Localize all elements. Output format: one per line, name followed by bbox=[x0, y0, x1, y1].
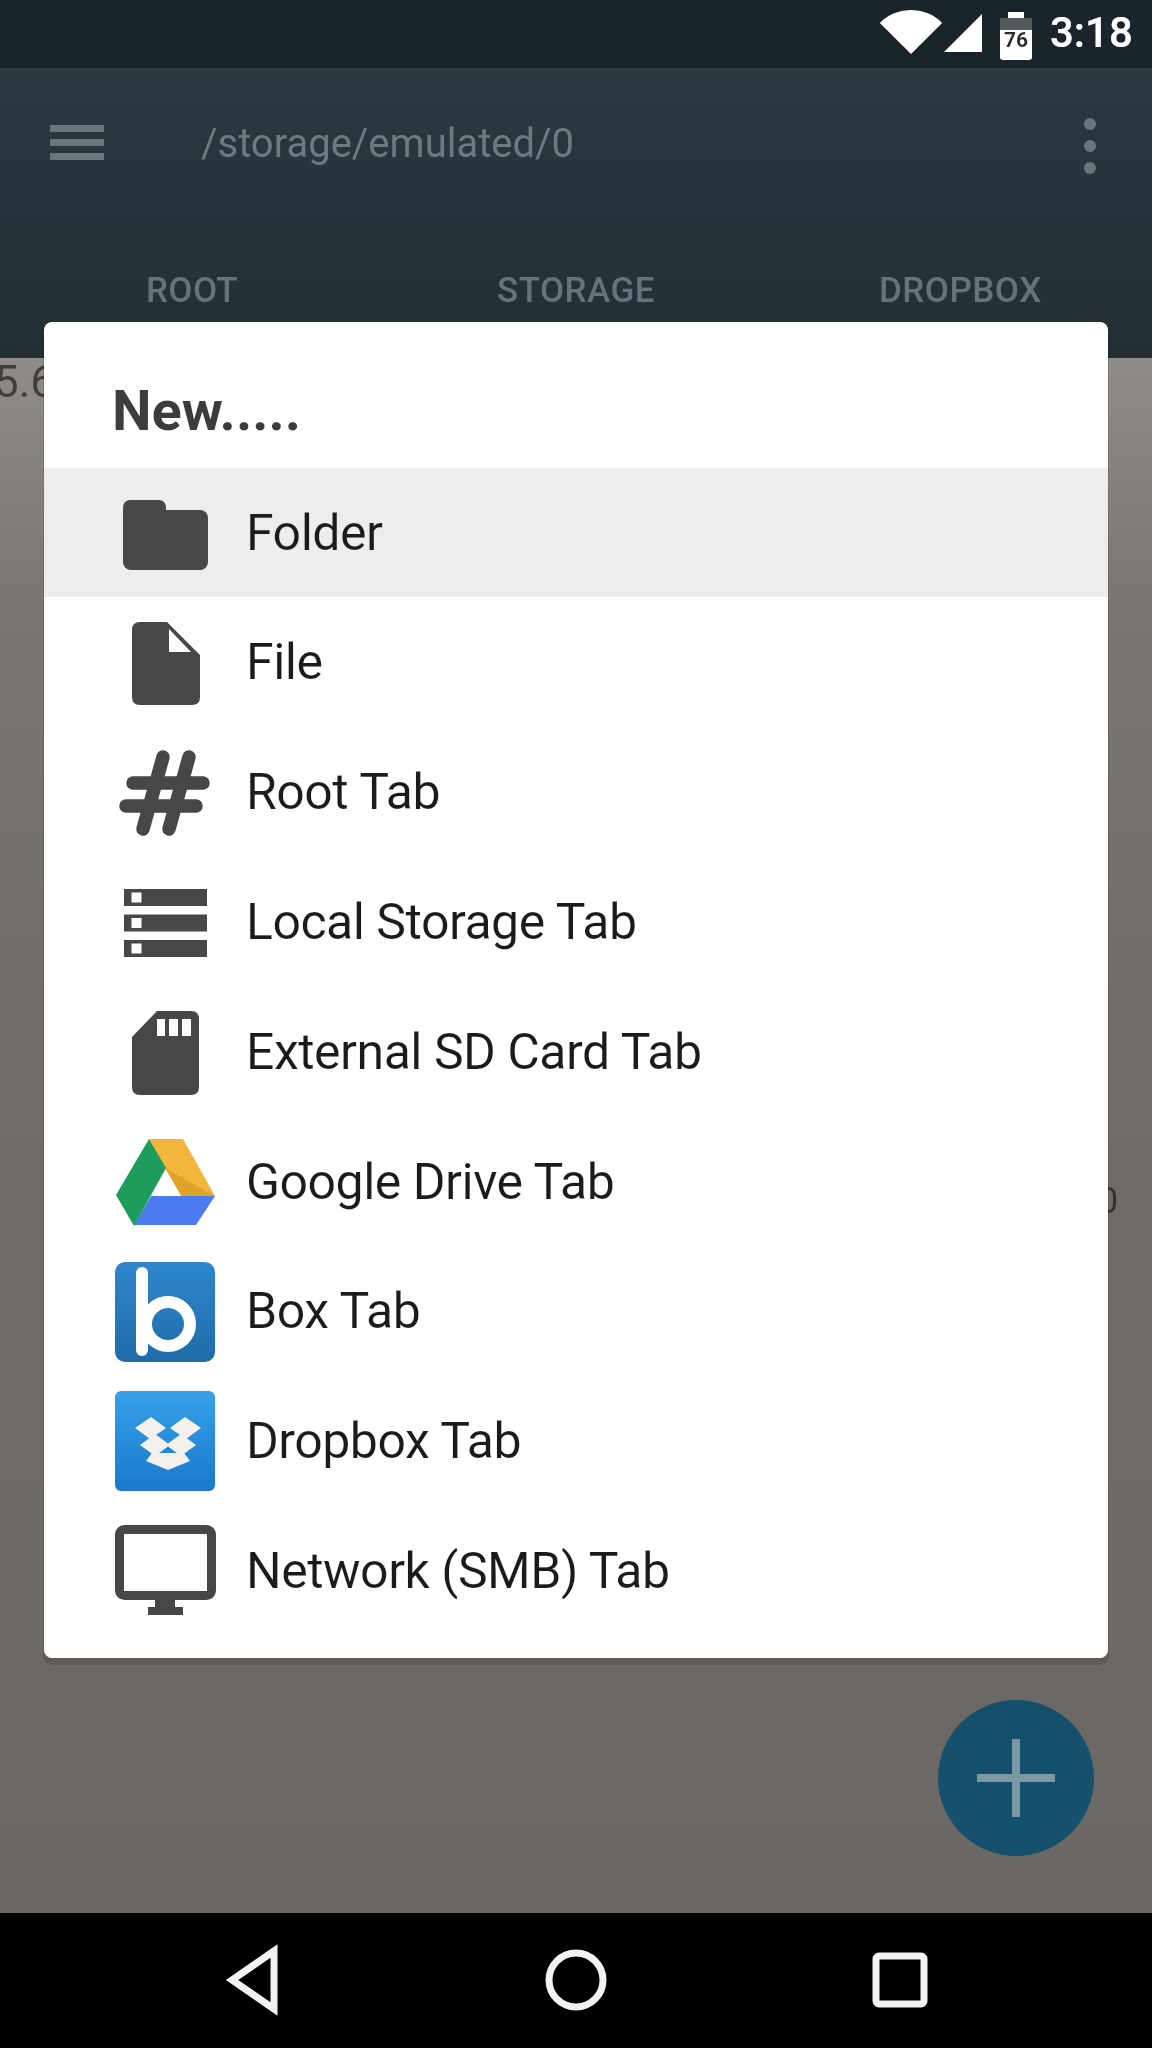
staticText: Root Tab bbox=[246, 763, 440, 822]
button[interactable]: ROOT bbox=[0, 258, 384, 322]
button[interactable] bbox=[212, 1935, 304, 2025]
staticText: Google Drive Tab bbox=[246, 1153, 615, 1212]
button[interactable] bbox=[1064, 112, 1116, 180]
button[interactable]: Root Tab bbox=[44, 727, 1108, 857]
staticText: 5.6 bbox=[0, 356, 56, 408]
staticText: DROPBOX bbox=[879, 270, 1042, 311]
staticText: STORAGE bbox=[497, 270, 656, 311]
staticText: New..... bbox=[112, 378, 302, 444]
staticText: Box Tab bbox=[246, 1282, 421, 1341]
button[interactable] bbox=[938, 1700, 1094, 1856]
staticText: File bbox=[246, 633, 323, 692]
staticText: External SD Card Tab bbox=[246, 1023, 702, 1082]
button[interactable]: DROPBOX bbox=[768, 258, 1152, 322]
button[interactable]: Folder bbox=[44, 468, 1108, 598]
button[interactable]: Local Storage Tab bbox=[44, 857, 1108, 987]
staticText: ROOT bbox=[146, 270, 238, 311]
button[interactable]: File bbox=[44, 597, 1108, 727]
staticText: 3:18 bbox=[1050, 8, 1133, 57]
staticText: /storage/emulated/0 bbox=[201, 120, 575, 167]
staticText: 76 bbox=[1004, 28, 1029, 53]
staticText: 0 bbox=[1098, 1180, 1119, 1222]
button[interactable]: Network (SMB) Tab bbox=[44, 1506, 1108, 1636]
button[interactable]: STORAGE bbox=[384, 258, 768, 322]
staticText: Network (SMB) Tab bbox=[246, 1542, 670, 1601]
button[interactable]: Dropbox Tab bbox=[44, 1376, 1108, 1506]
staticText: Folder bbox=[246, 504, 383, 563]
button[interactable]: Google Drive Tab bbox=[44, 1117, 1108, 1247]
button[interactable]: External SD Card Tab bbox=[44, 987, 1108, 1117]
staticText: Local Storage Tab bbox=[246, 893, 637, 952]
button[interactable] bbox=[530, 1935, 622, 2025]
button[interactable] bbox=[38, 113, 118, 175]
staticText: Dropbox Tab bbox=[246, 1412, 522, 1471]
button[interactable] bbox=[854, 1935, 946, 2025]
button[interactable]: Box Tab bbox=[44, 1246, 1108, 1376]
